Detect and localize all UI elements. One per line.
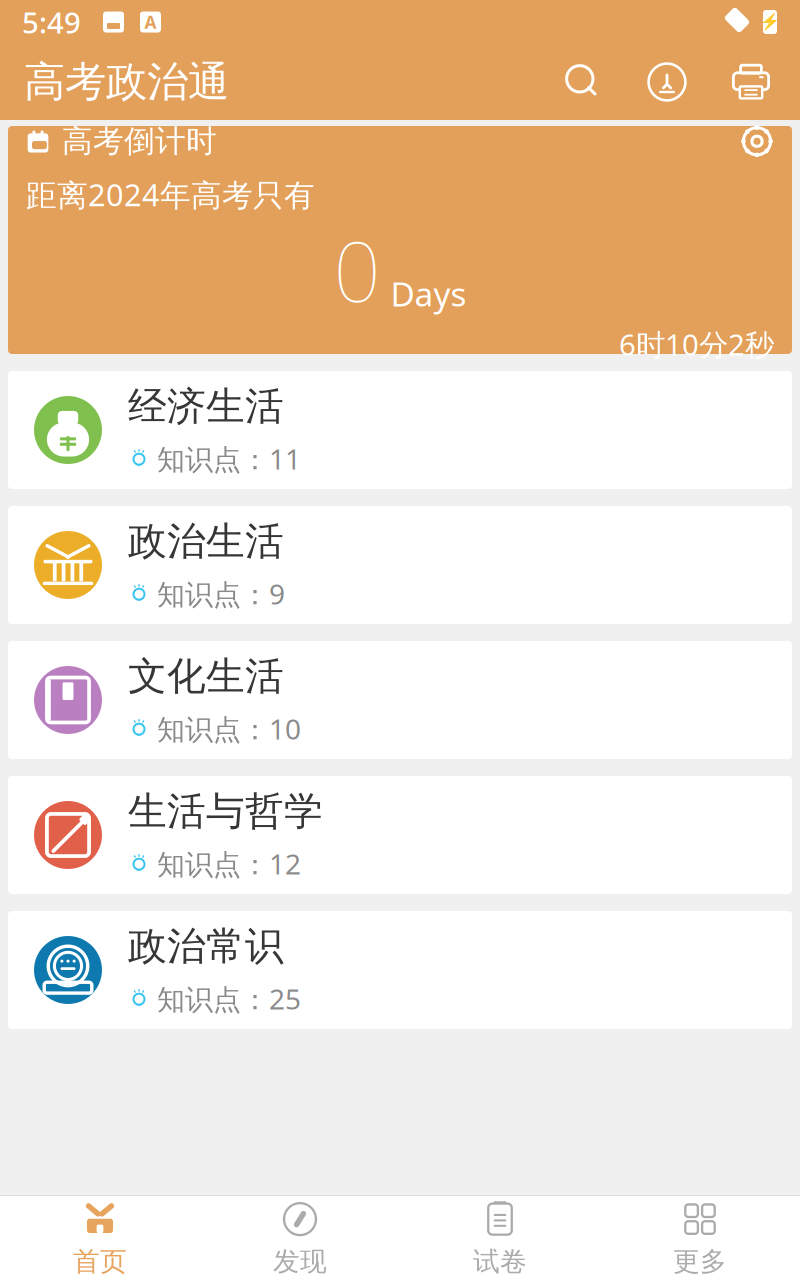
staticText: 0 — [333, 215, 380, 325]
staticText: 距离2024年高考只有 — [26, 174, 315, 215]
button[interactable]: 生活与哲学 — [8, 776, 792, 894]
staticText: Days — [390, 271, 466, 316]
staticText: 高考政治通 — [24, 57, 229, 107]
button[interactable]: 政治生活 — [8, 506, 792, 624]
button[interactable]: 下载 — [636, 51, 698, 113]
button[interactable]: 政治常识 — [8, 911, 792, 1029]
staticText: 经济生活 — [128, 383, 284, 430]
staticText: 政治生活 — [128, 518, 284, 565]
staticText: 高考倒计时 — [62, 122, 217, 160]
staticText: 知识点：10 — [157, 710, 301, 747]
staticText: 知识点：12 — [157, 845, 301, 882]
staticText: 知识点：11 — [157, 440, 301, 477]
staticText: 文化生活 — [128, 653, 284, 700]
staticText: 首页 — [73, 1245, 127, 1278]
button[interactable]: 发现 — [200, 1196, 400, 1280]
button[interactable]: 高考倒计时 — [8, 126, 792, 354]
button[interactable]: 搜索 — [552, 51, 614, 113]
button[interactable]: 经济生活 — [8, 371, 792, 489]
button[interactable]: 文化生活 — [8, 641, 792, 759]
button[interactable]: 试卷 — [400, 1196, 600, 1280]
staticText: 试卷 — [473, 1245, 527, 1278]
staticText: 5:49 — [22, 2, 81, 41]
staticText: 政治常识 — [128, 923, 284, 970]
staticText: 生活与哲学 — [128, 788, 323, 835]
staticText: 知识点：25 — [157, 980, 301, 1017]
staticText: 知识点：9 — [157, 575, 285, 612]
staticText: ⚡ — [760, 13, 780, 31]
staticText: A — [144, 10, 156, 33]
button[interactable]: 首页 — [0, 1196, 200, 1280]
button[interactable]: 打印 — [720, 51, 782, 113]
staticText: 更多 — [673, 1245, 727, 1278]
staticText: 发现 — [273, 1245, 327, 1278]
button[interactable]: 更多 — [600, 1196, 800, 1280]
staticText: 6时10分2秒 — [619, 325, 774, 364]
